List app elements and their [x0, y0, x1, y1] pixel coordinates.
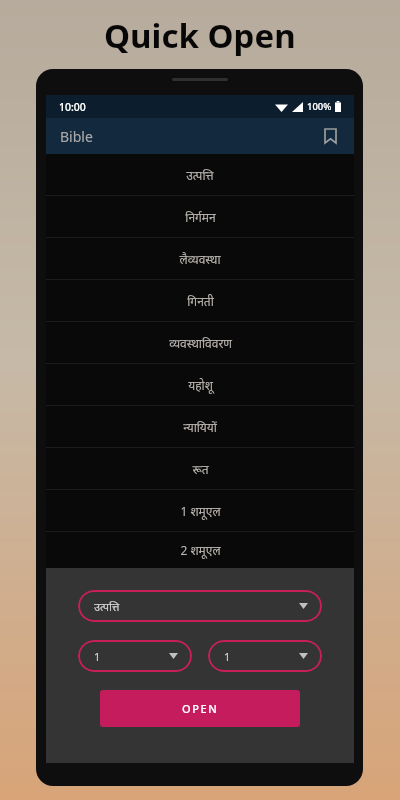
staticText: 1: [224, 649, 231, 664]
staticText: न्यायियों: [183, 419, 217, 435]
staticText: 2 शमूएल: [180, 542, 221, 558]
button[interactable]: यहोशू: [46, 364, 354, 405]
button[interactable]: रूत: [46, 448, 354, 489]
staticText: लैव्यवस्था: [179, 251, 221, 267]
button[interactable]: न्यायियों: [46, 406, 354, 447]
button[interactable]: 1 शमूएल: [46, 490, 354, 531]
button[interactable]: लैव्यवस्था: [46, 238, 354, 279]
staticText: निर्गमन: [185, 209, 216, 225]
button[interactable]: निर्गमन: [46, 196, 354, 237]
button[interactable]: उत्पत्ति: [78, 590, 322, 622]
button[interactable]: गिनती: [46, 280, 354, 321]
button[interactable]: व्यवस्थाविवरण: [46, 322, 354, 363]
button[interactable]: OPEN: [100, 690, 300, 727]
staticText: उत्पत्ति: [94, 599, 120, 614]
staticText: OPEN: [182, 701, 219, 716]
staticText: गिनती: [187, 293, 214, 309]
staticText: यहोशू: [188, 377, 213, 393]
button[interactable]: उत्पत्ति: [46, 154, 354, 195]
staticText: 1 शमूएल: [180, 503, 221, 519]
staticText: Quick Open: [104, 13, 296, 58]
button[interactable]: 2 शमूएल: [46, 532, 354, 568]
staticText: 1: [94, 649, 101, 664]
button[interactable]: 1: [208, 640, 322, 672]
button[interactable]: 1: [78, 640, 192, 672]
staticText: 100%: [307, 100, 332, 113]
staticText: Bible: [60, 127, 93, 146]
staticText: 10:00: [59, 100, 86, 114]
staticText: व्यवस्थाविवरण: [169, 335, 232, 351]
staticText: उत्पत्ति: [186, 167, 214, 183]
button[interactable]: Bookmarks: [316, 122, 344, 150]
staticText: रूत: [192, 461, 209, 477]
